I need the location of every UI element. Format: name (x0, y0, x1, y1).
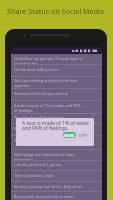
button[interactable]: No one is just as cool as me, they all w… (11, 182, 102, 192)
button[interactable]: Smile, it confuses people. (11, 136, 102, 150)
button[interactable]: I'm the dude with your m. (11, 65, 102, 77)
button[interactable]: SHARE (63, 132, 76, 138)
button[interactable]: Time is precious, waste. (11, 171, 102, 182)
staticText: Don't judge me I was born to awes not pe… (14, 152, 75, 161)
button[interactable]: A tear is made of 1% of water and 99% of… (11, 101, 102, 114)
staticText: Someone that hurt you and cry. (14, 91, 69, 96)
staticText: I'm the dude with your m. (14, 67, 59, 72)
button[interactable]: If you want to be happy, be. (11, 124, 102, 136)
staticText: No one is just as cool as me, they all w… (14, 184, 82, 189)
button[interactable]: I'm jealous my parents, I'll never have … (11, 54, 102, 65)
button[interactable]: Don't judge me I was born to awes not pe… (11, 150, 102, 161)
button[interactable]: Your mind is full of problems (11, 113, 102, 124)
button[interactable]: You? are nothing and you're the reas any… (11, 76, 102, 89)
staticText: SHARE (64, 133, 75, 137)
staticText: If you want to be happy, be. (14, 126, 63, 131)
staticText: Share Status on Social Media (7, 6, 104, 16)
staticText: Be yourself, everyone else is taken. (14, 194, 75, 199)
staticText: You? are nothing and you're the reas any… (14, 78, 78, 88)
staticText: I'm jealous my parents, I'll never have … (14, 56, 83, 65)
staticText: Your mind is full of problems (14, 115, 64, 120)
staticText: A tear is made of 1% of water and 99% of… (14, 103, 81, 113)
staticText: A tear is made of 1% of water and 99% of… (22, 120, 92, 132)
button[interactable]: Someone that hurt you and cry. (11, 89, 102, 101)
staticText: COPY (79, 133, 88, 137)
button[interactable]: COPY (78, 132, 89, 138)
staticText: I do not get drunk. I get aw. (14, 162, 63, 167)
button[interactable]: I do not get drunk. I get aw. (11, 160, 102, 171)
staticText: Smile, it confuses people. (14, 138, 58, 143)
button[interactable]: Be yourself, everyone else is taken. (11, 192, 102, 200)
staticText: Time is precious, waste. (14, 173, 56, 178)
